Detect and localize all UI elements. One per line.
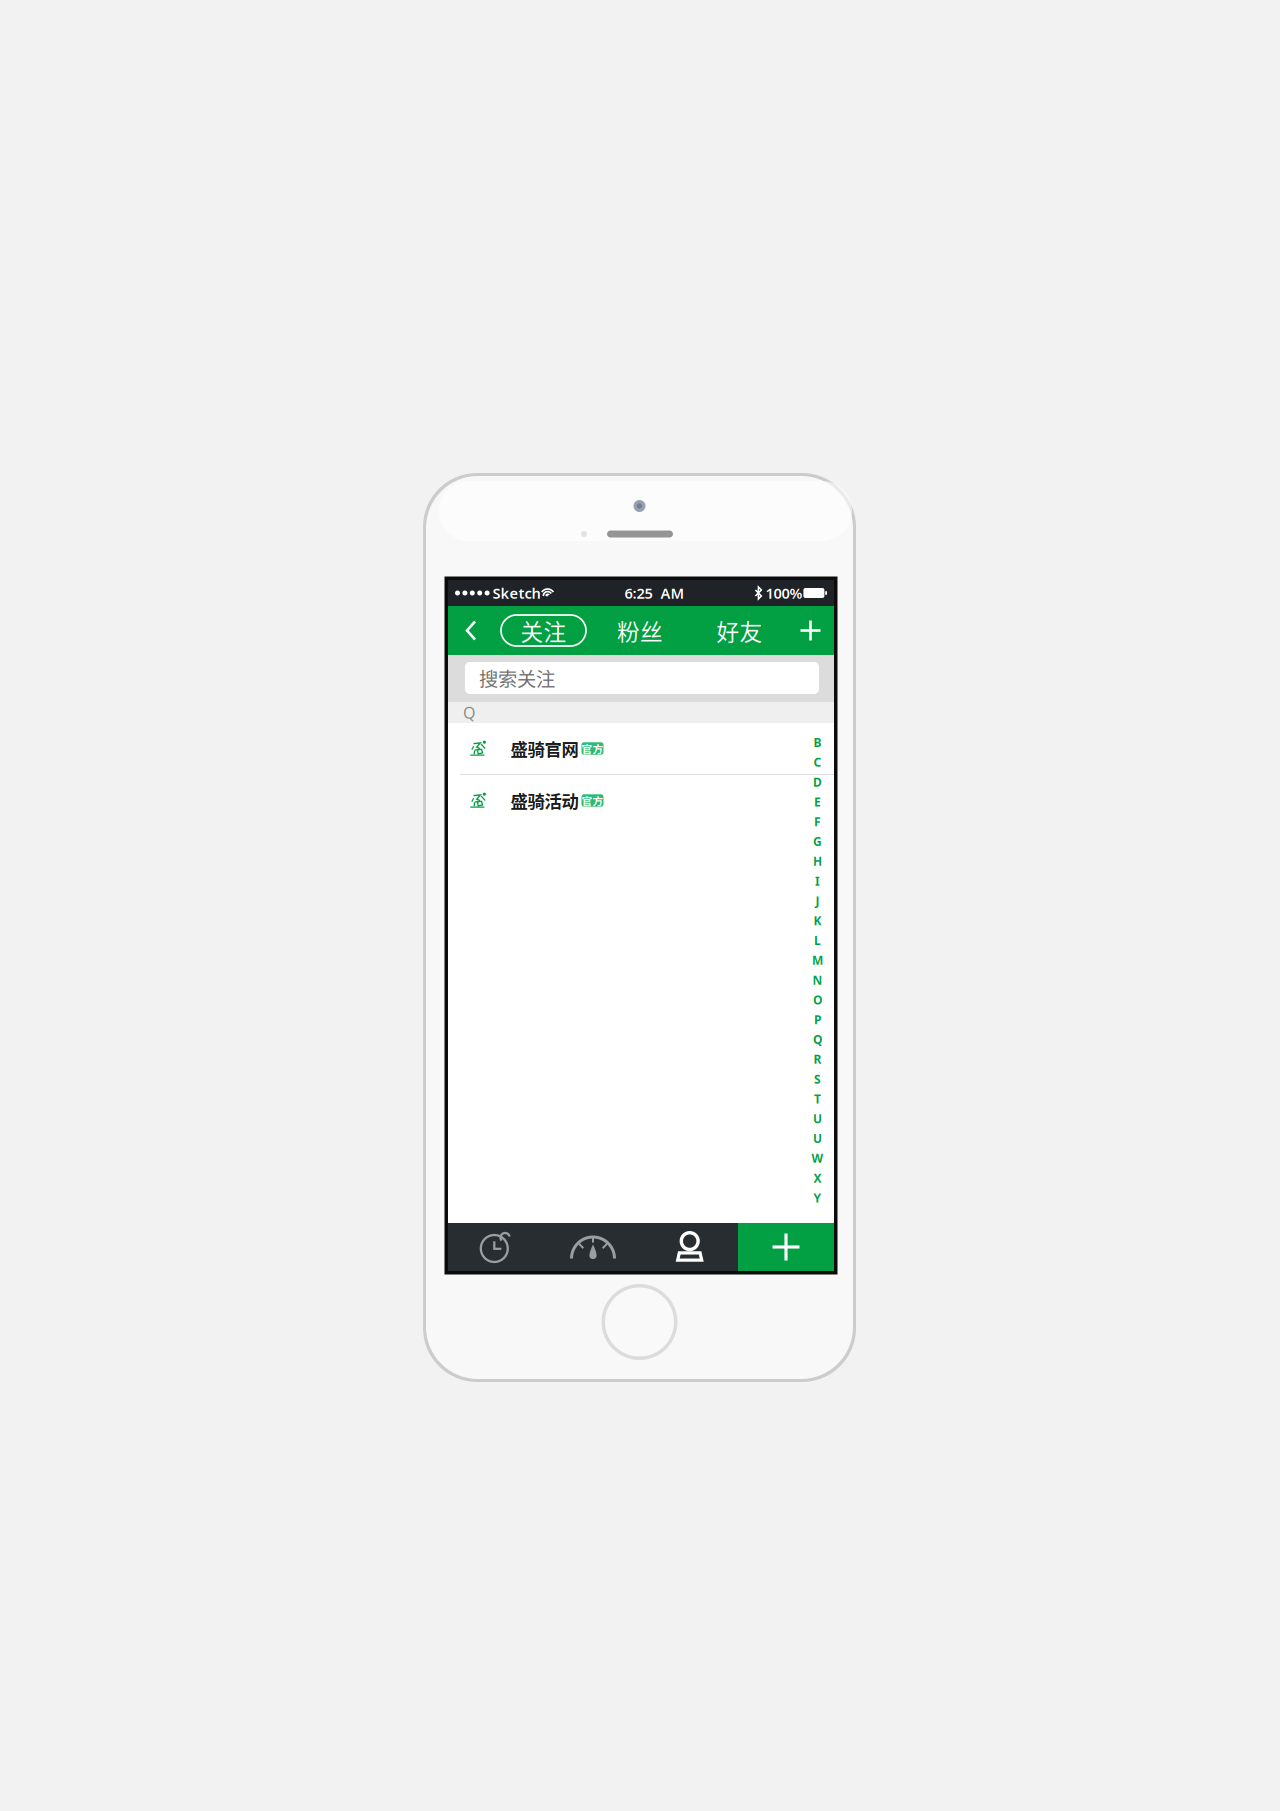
staticText: 盛骑官网 <box>510 736 578 761</box>
staticText: 官方 <box>581 741 603 756</box>
staticText: Sketch <box>493 583 541 603</box>
staticText: L <box>814 932 821 948</box>
staticText: O <box>813 992 822 1008</box>
button[interactable]: 粉丝 <box>609 606 671 655</box>
staticText: I <box>815 873 820 889</box>
button[interactable]: Back <box>454 606 488 655</box>
staticText: 100% <box>765 583 802 603</box>
staticText: 关注 <box>520 614 566 647</box>
staticText: X <box>813 1170 821 1186</box>
staticText: F <box>814 814 821 829</box>
button[interactable]: 搜索关注 <box>465 662 819 694</box>
button[interactable]: 盛骑活动 <box>448 775 834 826</box>
staticText: T <box>814 1091 821 1107</box>
staticText: G <box>813 833 822 849</box>
button[interactable]: Profile <box>641 1223 738 1271</box>
staticText: 好友 <box>716 614 762 647</box>
staticText: Q <box>463 702 475 723</box>
button[interactable]: Timer <box>448 1223 545 1271</box>
staticText: Y <box>813 1190 821 1206</box>
staticText: 6:25 AM <box>624 583 684 603</box>
staticText: H <box>813 853 822 869</box>
staticText: U <box>813 1130 822 1146</box>
staticText: Q <box>813 1031 822 1047</box>
staticText: B <box>813 734 821 750</box>
button[interactable]: 好友 <box>708 606 770 655</box>
staticText: E <box>814 794 821 810</box>
button[interactable]: Speed <box>545 1223 641 1271</box>
staticText: U <box>813 1111 822 1126</box>
staticText: N <box>812 972 822 988</box>
staticText: K <box>813 913 821 928</box>
staticText: M <box>812 952 823 968</box>
button[interactable]: 关注 <box>501 615 586 646</box>
staticText: S <box>814 1071 821 1087</box>
staticText: 搜索关注 <box>479 664 555 692</box>
staticText: D <box>813 774 822 790</box>
staticText: W <box>811 1150 823 1166</box>
button[interactable]: Add <box>792 606 828 655</box>
staticText: J <box>815 893 819 909</box>
staticText: R <box>813 1051 821 1067</box>
button[interactable]: Add <box>738 1223 834 1271</box>
staticText: C <box>813 754 821 770</box>
staticText: 盛骑活动 <box>510 788 578 813</box>
button[interactable]: 盛骑官网 <box>448 723 834 774</box>
staticText: 粉丝 <box>617 614 663 647</box>
staticText: P <box>814 1012 821 1027</box>
staticText: 官方 <box>581 793 603 808</box>
